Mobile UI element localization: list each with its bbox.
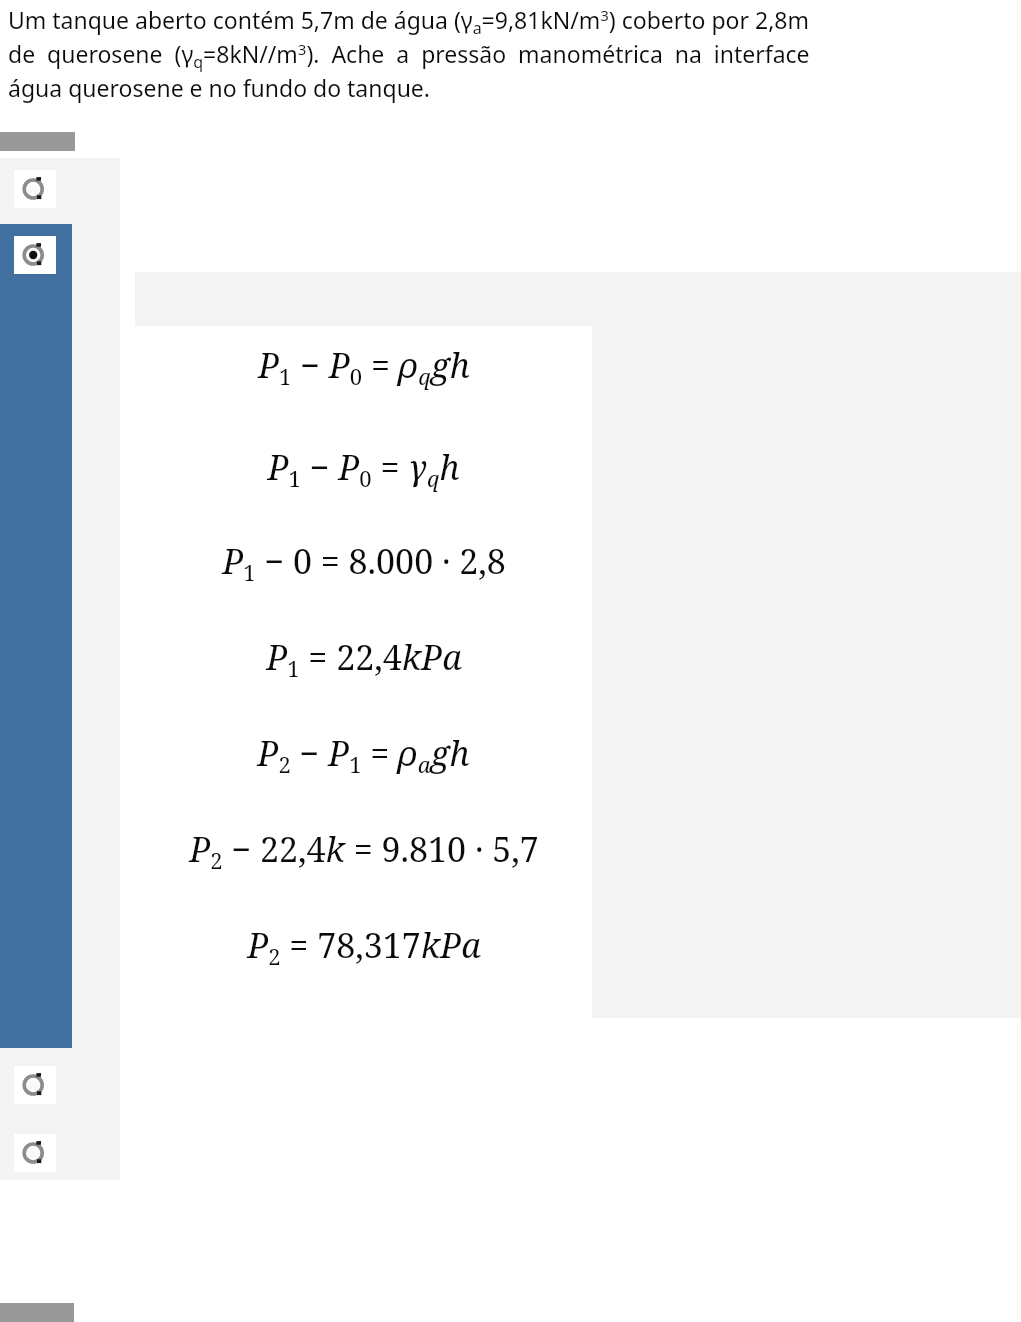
staticText: P1 − P0 = ρqgh (258, 342, 470, 391)
staticText: de querosene (γq=8kN//m3). Ache a pressã… (8, 38, 1013, 72)
staticText: P1 − 0 = 8.000 · 2,8 (222, 538, 506, 587)
button[interactable]: Selected item (14, 236, 56, 274)
staticText: P2 − 22,4k = 9.810 · 5,7 (189, 826, 539, 875)
staticText: P2 − P1 = ρagh (257, 730, 470, 779)
staticText: Um tanque aberto contém 5,7m de água (γa… (8, 4, 1013, 38)
staticText: P1 − P0 = γqh (267, 444, 460, 493)
button[interactable]: Loading item one (14, 170, 56, 208)
staticText: água querosene e no fundo do tanque. (8, 72, 1013, 103)
button[interactable]: Loading item four (14, 1134, 56, 1172)
button[interactable]: Loading item three (14, 1066, 56, 1104)
staticText: P1 = 22,4kPa (266, 634, 462, 683)
staticText: P2 = 78,317kPa (247, 922, 481, 971)
